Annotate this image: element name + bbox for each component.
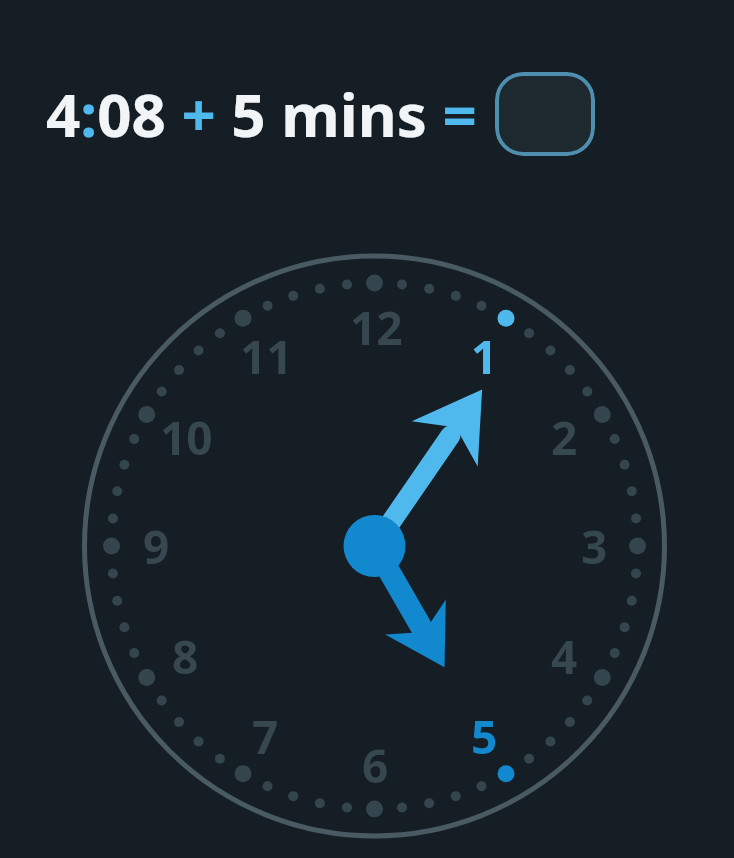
- staticText: 9: [143, 515, 170, 578]
- staticText: 4: [551, 625, 578, 688]
- staticText: 8: [172, 625, 199, 688]
- staticText: 2: [551, 406, 578, 469]
- staticText: 6: [362, 734, 389, 797]
- staticText: 3: [581, 515, 608, 578]
- button[interactable]: Analogue clock showing 4:08: [0, 0, 734, 858]
- staticText: 7: [252, 705, 279, 768]
- staticText: 5: [471, 705, 498, 768]
- staticText: 10: [160, 406, 213, 469]
- staticText: 4:08 + 5 mins =: [46, 73, 477, 155]
- staticText: 11: [240, 325, 293, 388]
- button[interactable]: Answer box: [495, 72, 595, 156]
- staticText: 1: [471, 325, 498, 388]
- staticText: 12: [350, 296, 403, 359]
